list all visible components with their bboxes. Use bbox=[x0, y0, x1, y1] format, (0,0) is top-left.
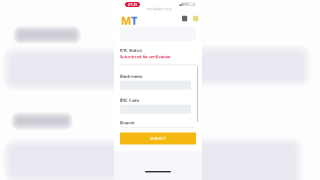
staticText: SUBMIT bbox=[150, 136, 166, 141]
button[interactable]: SUBMIT bbox=[120, 132, 196, 144]
staticText: M bbox=[121, 13, 131, 28]
button[interactable]: Rewards bbox=[193, 16, 198, 21]
staticText: mobikwikshot.com bbox=[147, 7, 171, 11]
staticText: Branch bbox=[120, 120, 135, 125]
staticText: KYC Status bbox=[120, 47, 142, 53]
staticText: 07:29 bbox=[128, 2, 137, 7]
button[interactable]: Scan QR code bbox=[182, 16, 187, 21]
staticText: IFSC Code bbox=[120, 97, 139, 103]
staticText: T bbox=[131, 13, 137, 28]
staticText: 4G bbox=[184, 3, 188, 6]
staticText: Bank name bbox=[120, 73, 142, 79]
staticText: Submitted for verification bbox=[120, 54, 171, 59]
